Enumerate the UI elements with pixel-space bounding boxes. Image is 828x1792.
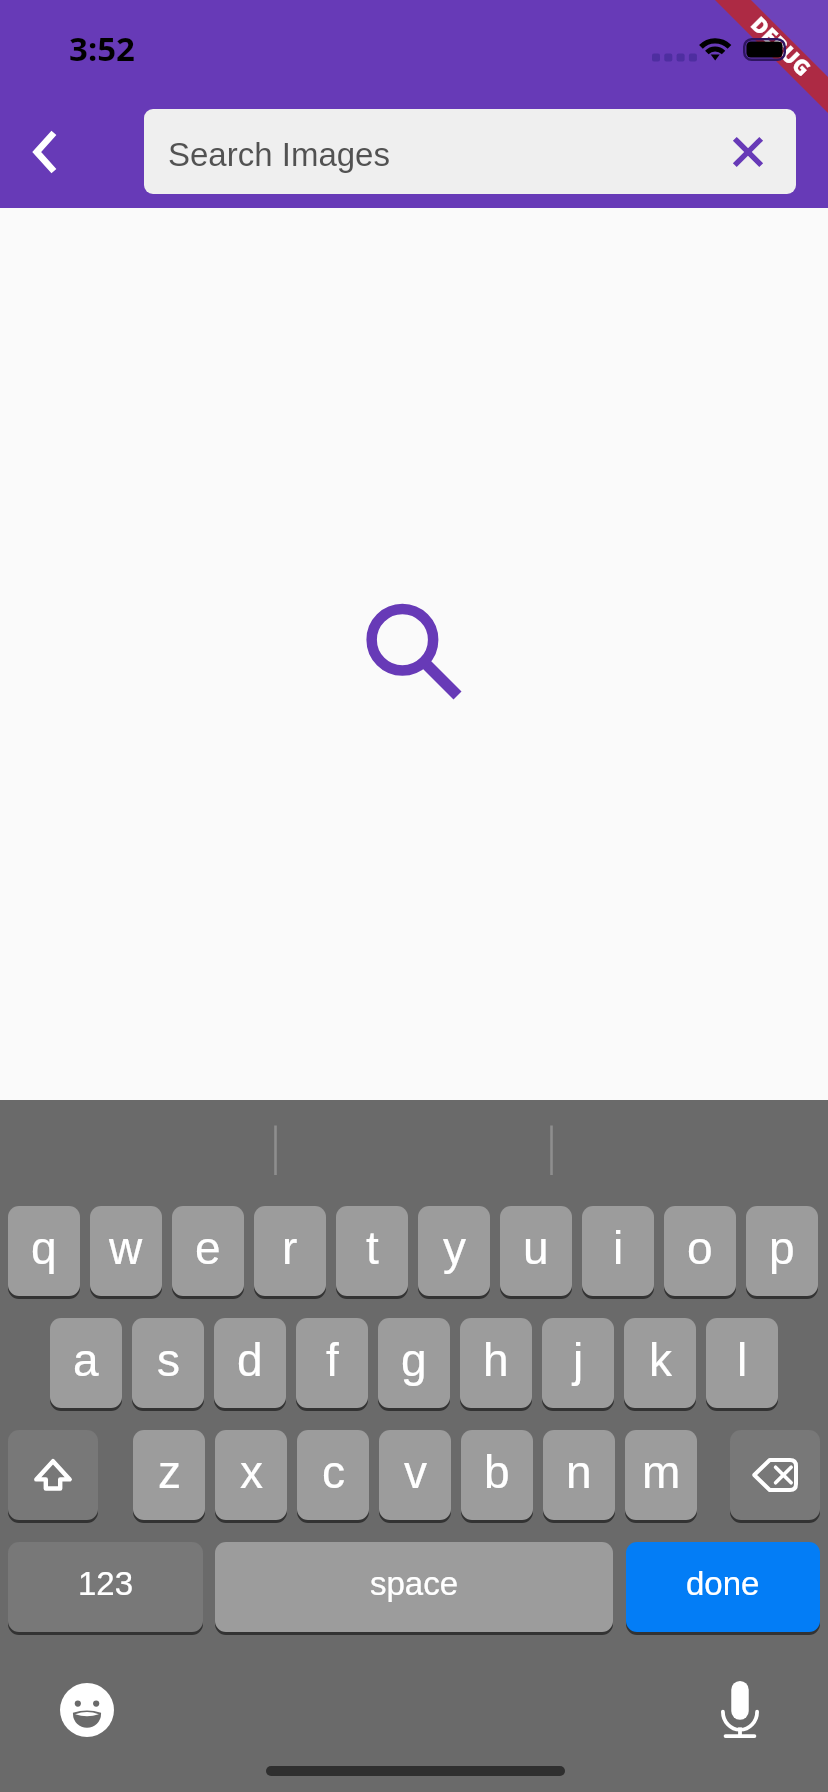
button[interactable]: i bbox=[582, 1206, 654, 1296]
button[interactable]: q bbox=[8, 1206, 80, 1296]
button[interactable]: e bbox=[172, 1206, 244, 1296]
button[interactable]: s bbox=[132, 1318, 204, 1408]
staticText: f bbox=[326, 1334, 339, 1385]
staticText: y bbox=[443, 1222, 466, 1273]
button[interactable]: r bbox=[254, 1206, 326, 1296]
button[interactable]: g bbox=[378, 1318, 450, 1408]
button[interactable]: done bbox=[626, 1542, 820, 1632]
button[interactable]: h bbox=[460, 1318, 532, 1408]
staticText: q bbox=[31, 1222, 57, 1273]
staticText: s bbox=[157, 1334, 180, 1385]
button[interactable]: Emoji keyboard bbox=[55, 1678, 119, 1742]
button[interactable]: Shift bbox=[8, 1430, 98, 1520]
button[interactable]: z bbox=[133, 1430, 205, 1520]
staticText: 3:52 bbox=[69, 26, 135, 71]
button[interactable]: w bbox=[90, 1206, 162, 1296]
button[interactable]: c bbox=[297, 1430, 369, 1520]
staticText: t bbox=[366, 1222, 379, 1273]
button[interactable]: d bbox=[214, 1318, 286, 1408]
staticText: r bbox=[282, 1222, 298, 1273]
staticText: p bbox=[769, 1222, 795, 1273]
button[interactable]: y bbox=[418, 1206, 490, 1296]
button[interactable]: Search Images bbox=[144, 109, 796, 194]
button[interactable]: n bbox=[543, 1430, 615, 1520]
staticText: o bbox=[687, 1222, 713, 1273]
button[interactable]: x bbox=[215, 1430, 287, 1520]
staticText: b bbox=[484, 1446, 510, 1497]
button[interactable]: u bbox=[500, 1206, 572, 1296]
staticText: DEBUG bbox=[745, 10, 817, 83]
staticText: e bbox=[195, 1222, 221, 1273]
staticText: d bbox=[237, 1334, 263, 1385]
button[interactable]: Voice input bbox=[708, 1678, 772, 1742]
button[interactable]: m bbox=[625, 1430, 697, 1520]
button[interactable]: f bbox=[296, 1318, 368, 1408]
button[interactable]: Clear search bbox=[700, 109, 796, 194]
staticText: space bbox=[370, 1565, 459, 1602]
button[interactable]: 123 bbox=[8, 1542, 203, 1632]
staticText: z bbox=[158, 1446, 181, 1497]
button[interactable]: j bbox=[542, 1318, 614, 1408]
staticText: n bbox=[566, 1446, 592, 1497]
staticText: g bbox=[401, 1334, 427, 1385]
staticText: a bbox=[73, 1334, 99, 1385]
staticText: m bbox=[642, 1446, 681, 1497]
button[interactable]: Back bbox=[0, 108, 92, 200]
staticText: Search Images bbox=[168, 136, 390, 173]
staticText: k bbox=[649, 1334, 672, 1385]
button[interactable]: space bbox=[215, 1542, 613, 1632]
staticText: u bbox=[523, 1222, 549, 1273]
staticText: done bbox=[686, 1565, 760, 1602]
staticText: l bbox=[737, 1334, 748, 1385]
staticText: h bbox=[483, 1334, 509, 1385]
staticText: i bbox=[613, 1222, 624, 1273]
button[interactable]: v bbox=[379, 1430, 451, 1520]
staticText: 123 bbox=[78, 1565, 134, 1602]
button[interactable]: p bbox=[746, 1206, 818, 1296]
staticText: x bbox=[240, 1446, 263, 1497]
button[interactable]: l bbox=[706, 1318, 778, 1408]
button[interactable]: b bbox=[461, 1430, 533, 1520]
staticText: w bbox=[109, 1222, 143, 1273]
button[interactable]: a bbox=[50, 1318, 122, 1408]
button[interactable]: t bbox=[336, 1206, 408, 1296]
button[interactable]: k bbox=[624, 1318, 696, 1408]
button[interactable]: o bbox=[664, 1206, 736, 1296]
button[interactable]: Backspace bbox=[730, 1430, 820, 1520]
staticText: c bbox=[322, 1446, 345, 1497]
staticText: v bbox=[404, 1446, 427, 1497]
staticText: j bbox=[573, 1334, 584, 1385]
